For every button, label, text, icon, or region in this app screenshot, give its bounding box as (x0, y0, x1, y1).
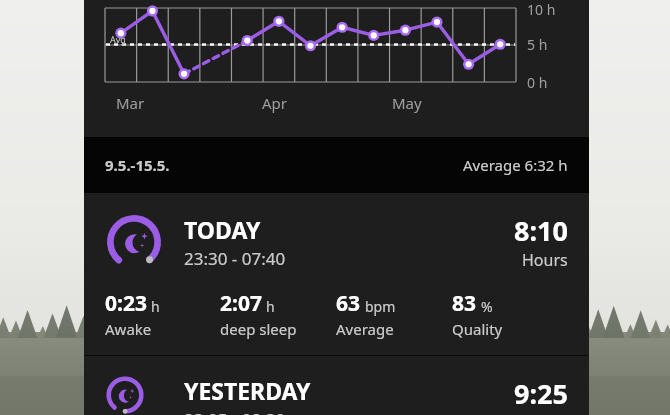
staticText: 8:10 (514, 212, 568, 249)
staticText: 9.5.-15.5. (105, 155, 170, 175)
staticText: Awake (105, 319, 152, 339)
staticText: 23:30 - 07:40 (184, 247, 286, 270)
staticText: 83 (452, 289, 477, 318)
staticText: 0:23 (105, 289, 147, 318)
staticText: 0 h (527, 73, 548, 92)
staticText: 5 h (527, 35, 548, 54)
staticText: 10 h (527, 0, 556, 19)
staticText: Average (336, 319, 394, 339)
staticText: Mar (116, 93, 145, 113)
staticText: deep sleep (220, 319, 297, 339)
staticText: 63 (336, 289, 361, 318)
staticText: Average 6:32 h (463, 155, 568, 175)
staticText: 9:25 (514, 375, 568, 412)
other: Sleep score ring (105, 213, 163, 271)
staticText: Avg (110, 33, 126, 45)
staticText: % (481, 297, 493, 316)
staticText: 23:05 - 08:30 (184, 408, 286, 415)
staticText: May (392, 93, 422, 113)
button[interactable]: Sleep score ring (84, 193, 589, 355)
staticText: Hours (522, 249, 568, 271)
staticText: h (266, 297, 275, 316)
button[interactable]: 9.5.-15.5. (84, 137, 589, 193)
staticText: Quality (452, 319, 503, 339)
staticText: bpm (365, 297, 396, 316)
staticText: 2:07 (220, 289, 262, 318)
button[interactable]: Sleep score ring (84, 356, 589, 415)
staticText: Apr (262, 93, 288, 113)
staticText: TODAY (184, 214, 261, 245)
staticText: h (151, 297, 160, 316)
staticText: YESTERDAY (184, 375, 311, 406)
other: Sleep score ring (105, 375, 163, 415)
